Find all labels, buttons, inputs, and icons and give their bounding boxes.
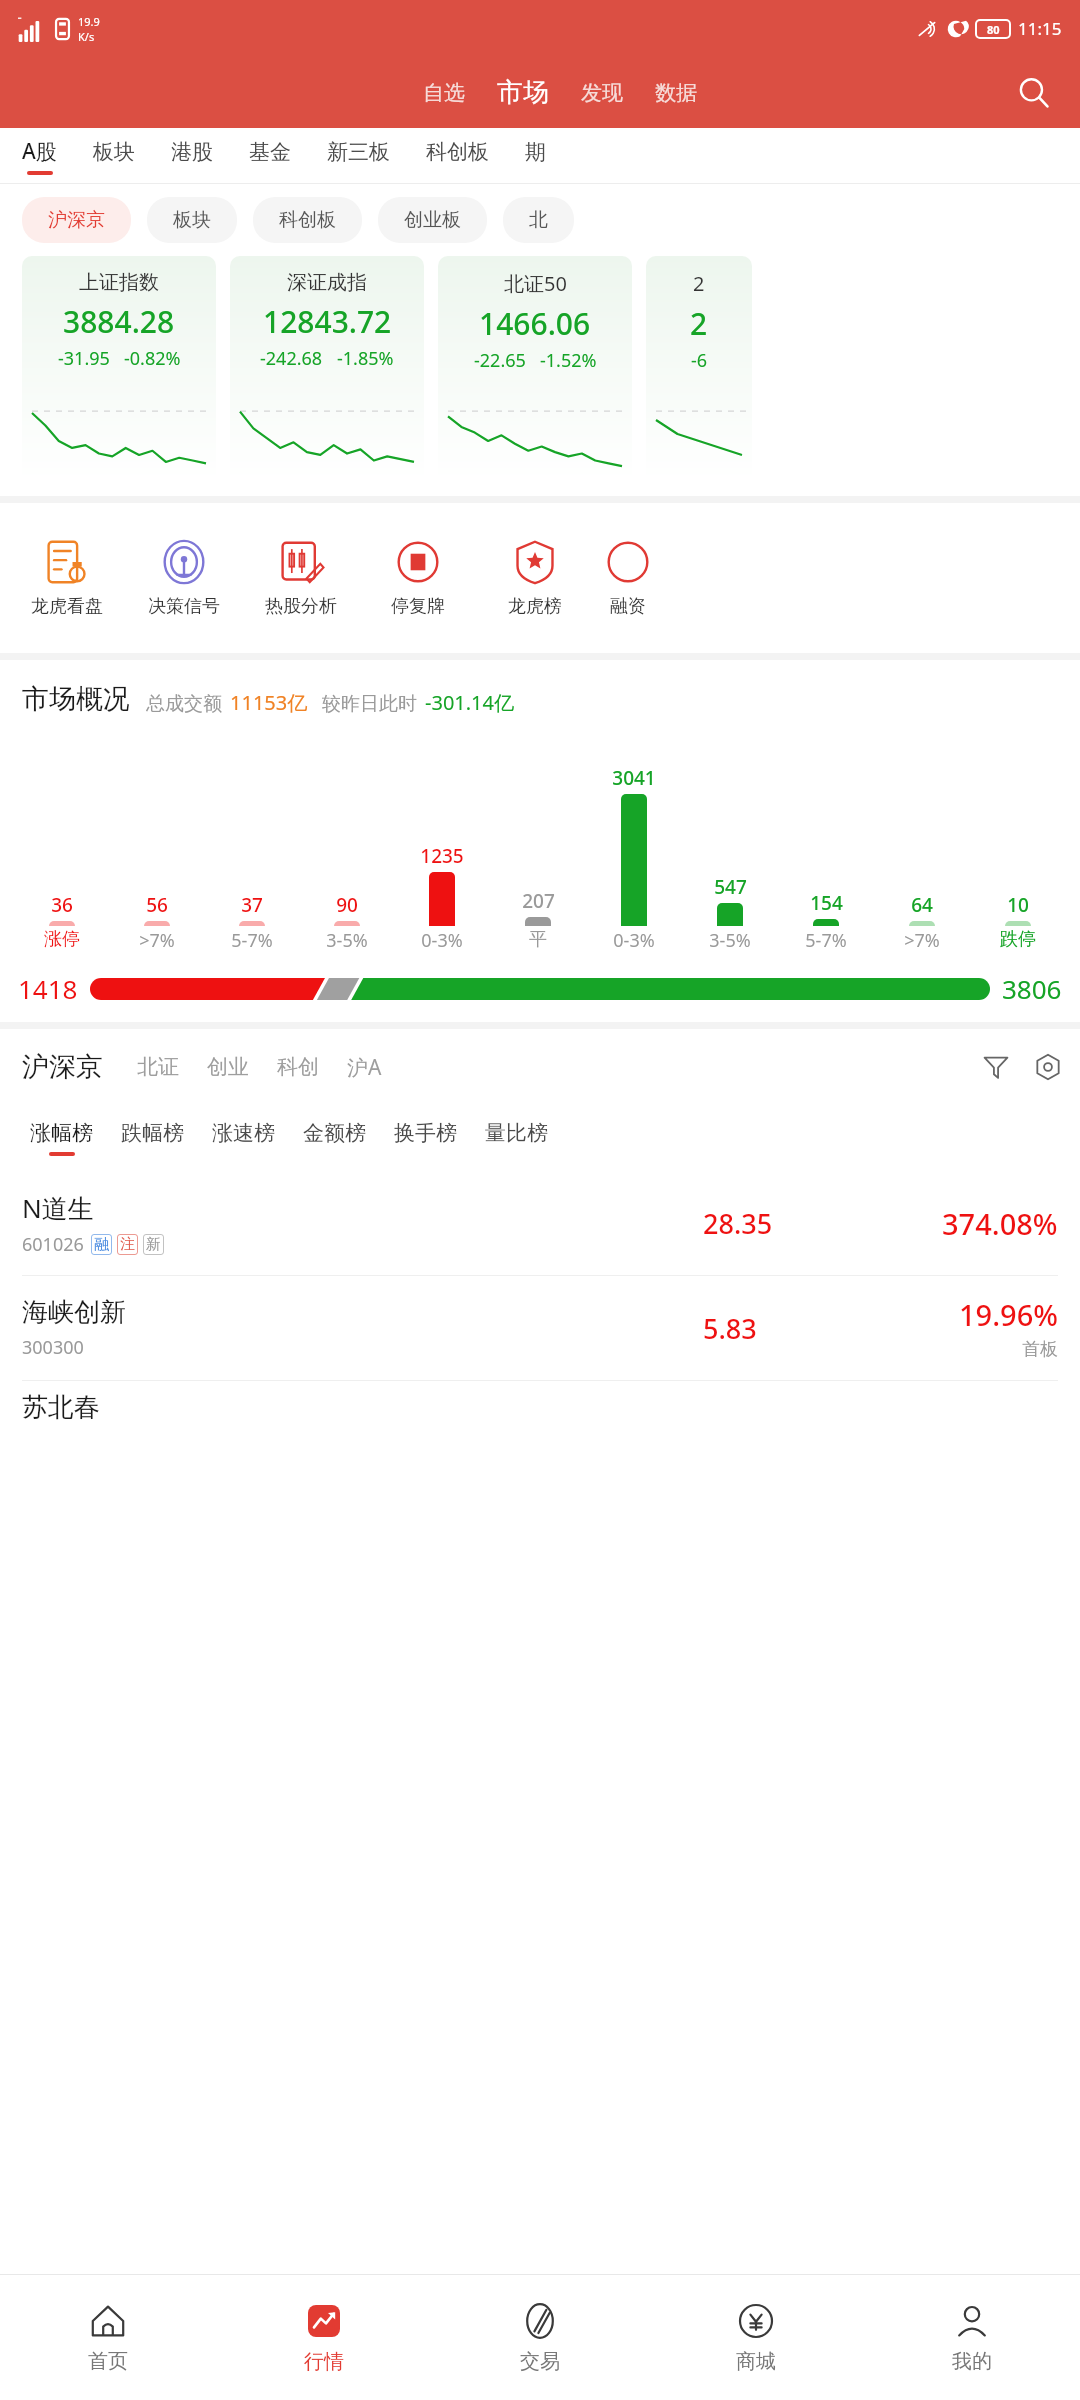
- staticText: 金额榜: [303, 1120, 366, 1146]
- button[interactable]: 沪深京: [22, 197, 131, 243]
- staticText: 首页: [88, 2349, 128, 2374]
- button[interactable]: 北证: [127, 1054, 189, 1080]
- staticText: 新三板: [327, 139, 390, 165]
- button[interactable]: 行情: [216, 2275, 432, 2400]
- staticText: 90: [336, 892, 358, 918]
- button[interactable]: 决策信号: [125, 529, 242, 628]
- staticText: 601026: [22, 1232, 84, 1257]
- staticText: 科创板: [279, 208, 336, 232]
- button[interactable]: 板块: [75, 128, 153, 184]
- button[interactable]: Search: [1010, 69, 1058, 117]
- button[interactable]: 首页: [0, 2275, 216, 2400]
- staticText: 374.08%: [942, 1204, 1058, 1243]
- staticText: 融资: [610, 595, 646, 618]
- staticText: 11:15: [1018, 17, 1062, 40]
- button[interactable]: 热股分析: [242, 529, 359, 628]
- staticText: 56: [146, 892, 168, 918]
- staticText: -1.52%: [540, 348, 597, 373]
- staticText: 发现: [581, 80, 623, 106]
- button[interactable]: N道生: [0, 1171, 1080, 1275]
- button[interactable]: 龙虎榜: [476, 529, 593, 628]
- staticText: 547: [714, 874, 747, 900]
- button[interactable]: 新三板: [309, 128, 408, 184]
- button[interactable]: 上证指数: [22, 256, 216, 481]
- button[interactable]: 发现: [571, 74, 633, 112]
- button[interactable]: 停复牌: [359, 529, 476, 628]
- button[interactable]: 融资: [593, 529, 663, 628]
- button[interactable]: 换手榜: [380, 1105, 471, 1171]
- staticText: 平: [529, 928, 547, 951]
- button[interactable]: 科创板: [408, 128, 507, 184]
- staticText: 5.83: [703, 1310, 873, 1347]
- button[interactable]: 北: [503, 197, 574, 243]
- staticText: 新: [146, 1235, 161, 1254]
- staticText: 科创: [277, 1054, 319, 1080]
- button[interactable]: 板块: [147, 197, 237, 243]
- staticText: 5-7%: [231, 928, 273, 953]
- button[interactable]: 量比榜: [471, 1105, 562, 1171]
- staticText: 北: [529, 208, 548, 232]
- staticText: 37: [241, 892, 263, 918]
- staticText: 3-5%: [326, 928, 368, 953]
- staticText: 创业板: [404, 208, 461, 232]
- button[interactable]: Filter: [974, 1045, 1018, 1089]
- staticText: N道生: [22, 1190, 94, 1226]
- staticText: 热股分析: [265, 595, 337, 618]
- button[interactable]: 交易: [432, 2275, 648, 2400]
- staticText: 1466.06: [479, 303, 591, 344]
- button[interactable]: 我的: [864, 2275, 1080, 2400]
- staticText: 1235: [420, 843, 464, 869]
- button[interactable]: 沪深京: [22, 1050, 103, 1084]
- staticText: 决策信号: [148, 595, 220, 618]
- staticText: 80: [987, 22, 1000, 37]
- button[interactable]: 涨幅榜: [16, 1105, 107, 1171]
- button[interactable]: 市场: [487, 70, 559, 115]
- button[interactable]: 创业板: [378, 197, 487, 243]
- staticText: -31.95: [58, 346, 110, 371]
- button[interactable]: 深证成指: [230, 256, 424, 481]
- staticText: 龙虎看盘: [31, 595, 103, 618]
- staticText: 我的: [952, 2349, 992, 2374]
- button[interactable]: 北证50: [438, 256, 632, 481]
- staticText: A股: [22, 137, 57, 166]
- button[interactable]: 数据: [645, 74, 707, 112]
- staticText: 3884.28: [63, 301, 175, 342]
- staticText: 3041: [612, 765, 656, 791]
- staticText: 停复牌: [391, 595, 445, 618]
- staticText: 基金: [249, 139, 291, 165]
- button[interactable]: 自选: [413, 74, 475, 112]
- button[interactable]: 龙虎看盘: [8, 529, 125, 628]
- button[interactable]: 涨速榜: [198, 1105, 289, 1171]
- staticText: 总成交额: [146, 692, 222, 716]
- button[interactable]: A股: [0, 128, 75, 184]
- button[interactable]: 基金: [231, 128, 309, 184]
- staticText: K/s: [78, 29, 95, 44]
- button[interactable]: 跌幅榜: [107, 1105, 198, 1171]
- staticText: 涨速榜: [212, 1120, 275, 1146]
- staticText: -242.68: [260, 346, 323, 371]
- staticText: 3-5%: [709, 928, 751, 953]
- button[interactable]: 2: [646, 256, 752, 481]
- button[interactable]: 科创板: [253, 197, 362, 243]
- staticText: 板块: [173, 208, 211, 232]
- button[interactable]: 商城: [648, 2275, 864, 2400]
- staticText: >7%: [904, 928, 940, 953]
- button[interactable]: 沪A: [337, 1053, 392, 1082]
- staticText: >7%: [139, 928, 175, 953]
- staticText: 行情: [304, 2349, 344, 2374]
- button[interactable]: Settings: [1026, 1045, 1070, 1089]
- button[interactable]: 港股: [153, 128, 231, 184]
- staticText: 北证: [137, 1054, 179, 1080]
- staticText: 苏北春: [22, 1391, 100, 1424]
- button[interactable]: 创业: [197, 1054, 259, 1080]
- button[interactable]: 金额榜: [289, 1105, 380, 1171]
- staticText: 11153亿: [230, 689, 308, 716]
- staticText: 0-3%: [613, 928, 655, 953]
- staticText: 数据: [655, 80, 697, 106]
- staticText: 北证50: [504, 270, 567, 297]
- button[interactable]: 期: [507, 128, 564, 184]
- button[interactable]: 海峡创新: [0, 1276, 1080, 1380]
- staticText: 3806: [1002, 971, 1062, 1006]
- button[interactable]: 科创: [267, 1054, 329, 1080]
- staticText: 交易: [520, 2349, 560, 2374]
